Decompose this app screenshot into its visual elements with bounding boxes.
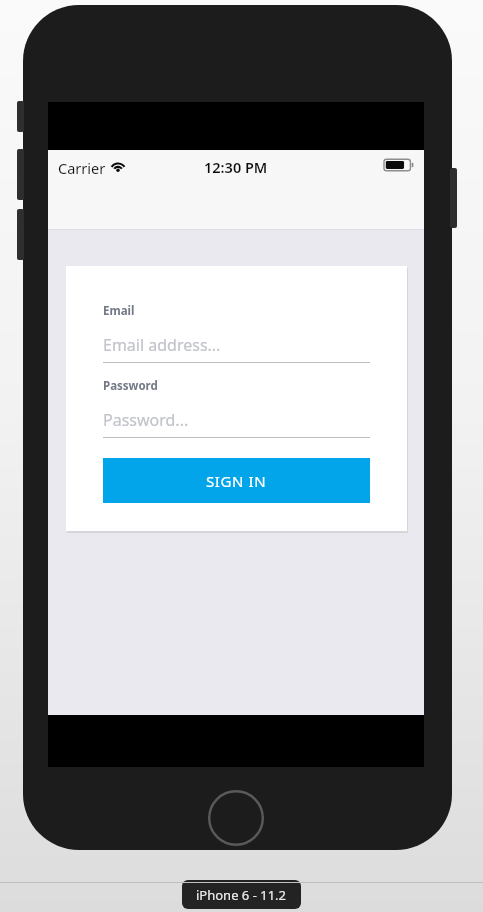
- staticText: Email address...: [103, 334, 221, 356]
- button[interactable]: Password...: [103, 407, 370, 432]
- staticText: iPhone 6 - 11.2: [196, 886, 287, 904]
- staticText: 12:30 PM: [204, 157, 268, 177]
- staticText: SIGN IN: [206, 471, 267, 491]
- staticText: Carrier: [58, 158, 106, 178]
- staticText: Password...: [103, 409, 189, 431]
- button[interactable]: Home: [208, 790, 264, 846]
- staticText: Password: [103, 378, 158, 394]
- button[interactable]: SIGN IN: [103, 458, 370, 503]
- staticText: Email: [103, 303, 135, 319]
- button[interactable]: Email address...: [103, 332, 370, 357]
